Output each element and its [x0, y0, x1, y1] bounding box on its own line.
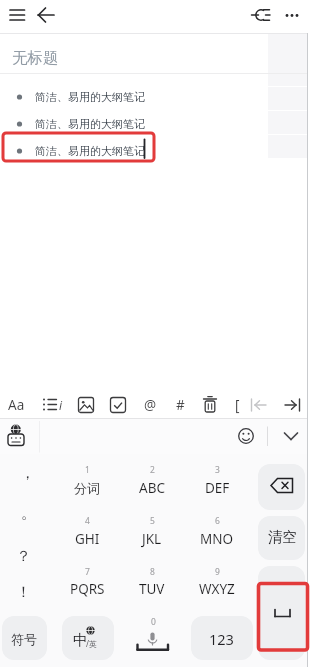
staticText: ABC — [139, 479, 165, 497]
staticText: 符号 — [11, 631, 37, 647]
staticText: WXYZ — [199, 580, 235, 598]
staticText: GHI — [75, 530, 100, 548]
staticText: 2 — [150, 464, 155, 476]
button[interactable] — [226, 392, 248, 418]
button[interactable] — [198, 392, 224, 418]
button[interactable] — [56, 566, 117, 610]
staticText: PQRS — [70, 580, 105, 598]
button[interactable] — [4, 4, 32, 30]
staticText: 3 — [215, 464, 220, 476]
staticText: TUV — [139, 580, 165, 598]
button[interactable] — [191, 616, 253, 660]
staticText: @ — [144, 396, 157, 414]
staticText: 9 — [215, 566, 220, 578]
button[interactable] — [2, 616, 47, 660]
staticText: 7 — [85, 566, 90, 578]
button[interactable] — [121, 516, 182, 560]
staticText: Aa — [8, 396, 25, 414]
button[interactable] — [56, 516, 117, 560]
staticText: 6 — [215, 515, 220, 527]
staticText: MNO — [200, 530, 234, 548]
staticText: ？ — [16, 547, 31, 566]
staticText: [ — [235, 396, 240, 414]
button[interactable] — [280, 4, 308, 30]
button[interactable] — [258, 464, 305, 510]
button[interactable] — [138, 392, 164, 418]
staticText: DEF — [205, 479, 230, 497]
staticText: 5 — [150, 515, 155, 527]
staticText: 无标题 — [12, 48, 59, 68]
button[interactable] — [168, 392, 194, 418]
button[interactable] — [248, 392, 270, 418]
button[interactable] — [278, 422, 306, 452]
button[interactable] — [186, 464, 248, 508]
button[interactable] — [234, 422, 260, 452]
staticText: 简洁、易用的大纲笔记 — [35, 90, 145, 104]
button[interactable] — [4, 422, 34, 452]
staticText: i — [59, 397, 63, 413]
staticText: 4 — [85, 515, 90, 527]
staticText: # — [176, 396, 185, 414]
button[interactable] — [119, 616, 188, 660]
button[interactable] — [32, 4, 60, 30]
button[interactable] — [4, 392, 30, 418]
button[interactable] — [121, 566, 182, 610]
staticText: 123 — [209, 629, 234, 649]
staticText: 分词 — [74, 480, 100, 496]
staticText: 1 — [85, 464, 90, 476]
button[interactable] — [284, 392, 306, 418]
button[interactable] — [121, 464, 182, 508]
button[interactable] — [246, 4, 276, 30]
button[interactable] — [258, 566, 305, 660]
staticText: 8 — [150, 566, 155, 578]
button[interactable] — [40, 392, 66, 418]
staticText: ！ — [16, 583, 31, 602]
button[interactable] — [186, 566, 248, 610]
button[interactable] — [186, 516, 248, 560]
button[interactable] — [258, 516, 305, 560]
staticText: 清空 — [268, 528, 297, 546]
staticText: 0 — [151, 616, 156, 628]
staticText: ， — [20, 464, 35, 483]
staticText: 。 — [21, 504, 36, 523]
staticText: 简洁、易用的大纲笔记 — [35, 117, 145, 131]
staticText: /英 — [86, 638, 97, 649]
staticText: 简洁、易用的大纲笔记 — [35, 144, 145, 158]
button[interactable] — [74, 392, 100, 418]
staticText: JKL — [142, 530, 162, 548]
staticText: 中 — [73, 631, 88, 650]
button[interactable] — [62, 616, 114, 660]
button[interactable] — [106, 392, 132, 418]
button[interactable] — [56, 464, 117, 508]
